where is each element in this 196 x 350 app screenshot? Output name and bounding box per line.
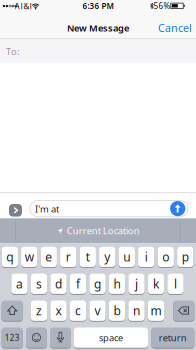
button[interactable]: l: [167, 273, 184, 294]
button[interactable]: Shift: [2, 300, 23, 321]
staticText: f: [76, 276, 80, 292]
button[interactable]: 123: [2, 327, 23, 348]
button[interactable]: space: [74, 327, 148, 348]
staticText: h: [113, 276, 120, 292]
button[interactable]: g: [89, 273, 106, 294]
button[interactable]: Delete: [173, 300, 194, 321]
button[interactable]: n: [128, 300, 145, 321]
staticText: AT&T: [15, 1, 33, 11]
staticText: Current Location: [67, 225, 140, 237]
button[interactable]: d: [50, 273, 67, 294]
staticText: v: [94, 303, 100, 319]
staticText: n: [133, 303, 140, 319]
button[interactable]: Cancel: [158, 21, 192, 35]
staticText: Cancel: [158, 21, 192, 35]
staticText: 56%: [153, 1, 170, 11]
button[interactable]: To:: [0, 39, 196, 63]
staticText: p: [182, 249, 189, 265]
button[interactable]: k: [148, 273, 164, 294]
staticText: s: [36, 276, 42, 292]
staticText: u: [123, 249, 130, 265]
staticText: y: [104, 249, 110, 265]
button[interactable]: Current Location: [16, 218, 180, 243]
button[interactable]: y: [99, 246, 115, 267]
staticText: l: [174, 276, 177, 292]
staticText: g: [94, 276, 101, 292]
button[interactable]: e: [41, 246, 57, 267]
button[interactable]: x: [50, 300, 67, 321]
staticText: t: [86, 249, 90, 265]
button[interactable]: h: [109, 273, 125, 294]
staticText: b: [113, 303, 120, 319]
button[interactable]: Emoji: [26, 327, 47, 348]
staticText: j: [135, 276, 138, 292]
button[interactable]: q: [2, 246, 18, 267]
staticText: w: [25, 249, 34, 265]
button[interactable]: r: [60, 246, 76, 267]
button[interactable]: v: [89, 300, 106, 321]
staticText: k: [153, 276, 159, 292]
staticText: 6:36 PM: [82, 1, 113, 11]
staticText: i: [145, 249, 148, 265]
staticText: d: [55, 276, 62, 292]
button[interactable]: I'm at: [29, 200, 188, 217]
staticText: I'm at: [35, 203, 59, 215]
staticText: c: [75, 303, 81, 319]
staticText: q: [6, 249, 13, 265]
staticText: z: [36, 303, 42, 319]
staticText: To:: [6, 45, 20, 58]
button[interactable]: u: [119, 246, 135, 267]
staticText: m: [150, 303, 161, 319]
button[interactable]: Apps: [9, 204, 22, 217]
staticText: space: [99, 331, 123, 344]
staticText: e: [45, 249, 52, 265]
button[interactable]: z: [31, 300, 47, 321]
staticText: a: [16, 276, 23, 292]
button[interactable]: p: [177, 246, 193, 267]
button[interactable]: c: [70, 300, 86, 321]
button[interactable]: Send: [170, 201, 185, 216]
button[interactable]: i: [138, 246, 154, 267]
button[interactable]: m: [148, 300, 164, 321]
button[interactable]: return: [151, 327, 194, 348]
button[interactable]: a: [11, 273, 28, 294]
button[interactable]: s: [31, 273, 47, 294]
button[interactable]: t: [80, 246, 96, 267]
staticText: r: [66, 249, 71, 265]
staticText: return: [159, 331, 187, 344]
button[interactable]: o: [158, 246, 174, 267]
staticText: o: [162, 249, 169, 265]
staticText: New Message: [67, 22, 129, 34]
button[interactable]: j: [128, 273, 145, 294]
button[interactable]: Dictate: [50, 327, 71, 348]
button[interactable]: w: [21, 246, 37, 267]
staticText: x: [55, 303, 61, 319]
button[interactable]: b: [109, 300, 125, 321]
staticText: 123: [5, 332, 20, 343]
button[interactable]: f: [70, 273, 86, 294]
